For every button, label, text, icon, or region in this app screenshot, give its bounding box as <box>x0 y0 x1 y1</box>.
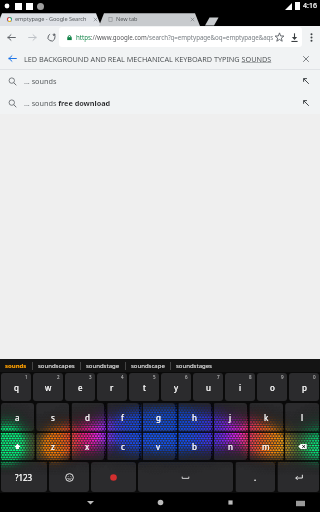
button[interactable]: emptypage - Google Search <box>4 12 100 26</box>
staticText: a <box>15 412 20 423</box>
staticText: 0 <box>313 374 316 380</box>
staticText: l <box>301 412 304 423</box>
button[interactable]: n <box>213 433 247 460</box>
button[interactable]: h <box>177 403 211 431</box>
button[interactable]: Enter <box>277 462 319 492</box>
staticText: y <box>174 382 179 393</box>
button[interactable]: Shift <box>1 433 34 460</box>
button[interactable]: l <box>285 403 319 431</box>
button[interactable]: x <box>71 433 104 460</box>
button[interactable]: soundscape <box>126 359 170 372</box>
staticText: v <box>156 441 161 452</box>
staticText: h <box>192 412 197 423</box>
button[interactable]: m <box>249 433 283 460</box>
button[interactable]: q <box>1 373 31 401</box>
button[interactable]: soundstage <box>81 359 125 372</box>
staticText: soundscapes <box>38 362 75 370</box>
button[interactable]: Back <box>70 493 110 512</box>
staticText: b <box>192 441 197 452</box>
staticText: t <box>143 382 146 393</box>
staticText: sounds <box>5 362 27 370</box>
staticText: 9 <box>281 374 284 380</box>
button[interactable]: r <box>97 373 127 401</box>
staticText: x <box>85 441 90 452</box>
staticText: e <box>78 382 83 393</box>
button[interactable]: t <box>129 373 159 401</box>
button[interactable]: ... sounds free download <box>0 92 320 114</box>
button[interactable]: Voice input <box>91 462 136 492</box>
staticText: 4:16 <box>303 1 317 11</box>
button[interactable]: sounds <box>0 359 32 372</box>
staticText: ... sounds <box>24 76 57 86</box>
button[interactable]: Forward <box>23 26 41 48</box>
staticText: New tab <box>116 15 138 23</box>
staticText: soundstage <box>86 362 120 370</box>
button[interactable]: ... sounds <box>0 70 320 92</box>
staticText: g <box>156 412 161 423</box>
staticText: c <box>121 441 125 452</box>
staticText: n <box>228 441 233 452</box>
button[interactable]: b <box>177 433 211 460</box>
button[interactable]: . <box>235 462 275 492</box>
staticText: i <box>239 382 242 393</box>
staticText: r <box>110 382 114 393</box>
button[interactable]: ?123 <box>1 462 47 492</box>
staticText: emptypage - Google Search <box>15 15 87 23</box>
button[interactable]: soundstages <box>171 359 217 372</box>
staticText: 6 <box>185 374 188 380</box>
button[interactable]: s <box>36 403 69 431</box>
staticText: z <box>51 441 55 452</box>
staticText: s <box>51 412 55 423</box>
staticText: 4 <box>121 374 124 380</box>
button[interactable]: Switch keyboard <box>294 497 306 509</box>
button[interactable]: f <box>106 403 139 431</box>
button[interactable]: Bookmark <box>271 26 287 48</box>
button[interactable]: o <box>257 373 287 401</box>
button[interactable]: Emoji <box>49 462 89 492</box>
button[interactable]: c <box>106 433 139 460</box>
button[interactable]: i <box>225 373 255 401</box>
staticText: m <box>262 441 270 452</box>
button[interactable]: Fill in suggestion <box>292 92 320 114</box>
button[interactable]: More options <box>302 26 320 48</box>
button[interactable]: Fill in suggestion <box>292 70 320 92</box>
button[interactable]: u <box>193 373 223 401</box>
button[interactable]: soundscapes <box>33 359 80 372</box>
button[interactable]: Reload <box>41 26 61 48</box>
button[interactable]: v <box>141 433 175 460</box>
button[interactable]: LED BACKGROUND AND REAL MECHANICAL KEYBO… <box>0 48 320 69</box>
button[interactable]: Home <box>140 493 180 512</box>
button[interactable]: Back <box>0 26 23 48</box>
staticText: p <box>302 382 307 393</box>
button[interactable]: Download <box>287 26 302 48</box>
button[interactable]: e <box>65 373 95 401</box>
button[interactable]: p <box>289 373 319 401</box>
button[interactable]: g <box>141 403 175 431</box>
button[interactable]: w <box>33 373 63 401</box>
staticText: soundstages <box>176 362 212 370</box>
button[interactable]: Remove suggestion <box>292 48 320 69</box>
staticText: https://www.google.com/search?q=emptypag… <box>76 33 274 41</box>
staticText: w <box>45 382 52 393</box>
button[interactable]: k <box>249 403 283 431</box>
staticText: f <box>121 412 124 423</box>
staticText: ... sounds free download <box>24 98 111 108</box>
button[interactable]: Backspace <box>285 433 319 460</box>
button[interactable]: Recents <box>210 493 250 512</box>
button[interactable]: a <box>1 403 34 431</box>
staticText: . <box>254 472 257 483</box>
button[interactable]: New tab <box>204 16 220 26</box>
button[interactable]: New tab <box>105 12 197 26</box>
staticText: ?123 <box>15 472 33 483</box>
button[interactable]: z <box>36 433 69 460</box>
button[interactable]: j <box>213 403 247 431</box>
staticText: LED BACKGROUND AND REAL MECHANICAL KEYBO… <box>24 54 272 64</box>
staticText: 1 <box>25 374 28 380</box>
button[interactable]: d <box>71 403 104 431</box>
staticText: o <box>270 382 275 393</box>
button[interactable]: Space <box>138 462 233 492</box>
button[interactable]: https://www.google.com/search?q=emptypag… <box>59 27 302 47</box>
button[interactable]: y <box>161 373 191 401</box>
staticText: u <box>206 382 211 393</box>
staticText: 3 <box>89 374 92 380</box>
